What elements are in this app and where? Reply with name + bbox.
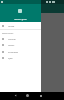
button[interactable]: Tutorial [0,36,41,42]
button[interactable]: Programs [0,49,41,55]
button[interactable]: Quiz [0,55,41,61]
button[interactable]: Topics [0,42,41,48]
staticText: Quiz [8,57,13,60]
staticText: Tutorial [8,38,16,41]
button[interactable]: Home [26,94,29,97]
staticText: LEARN JAVA [0,18,41,21]
button[interactable]: Back [13,93,18,98]
staticText: References [2,32,14,35]
button[interactable]: Home [0,23,41,29]
staticText: Programs [8,51,19,54]
staticText: Home [8,25,15,28]
staticText: Topics [8,44,15,47]
